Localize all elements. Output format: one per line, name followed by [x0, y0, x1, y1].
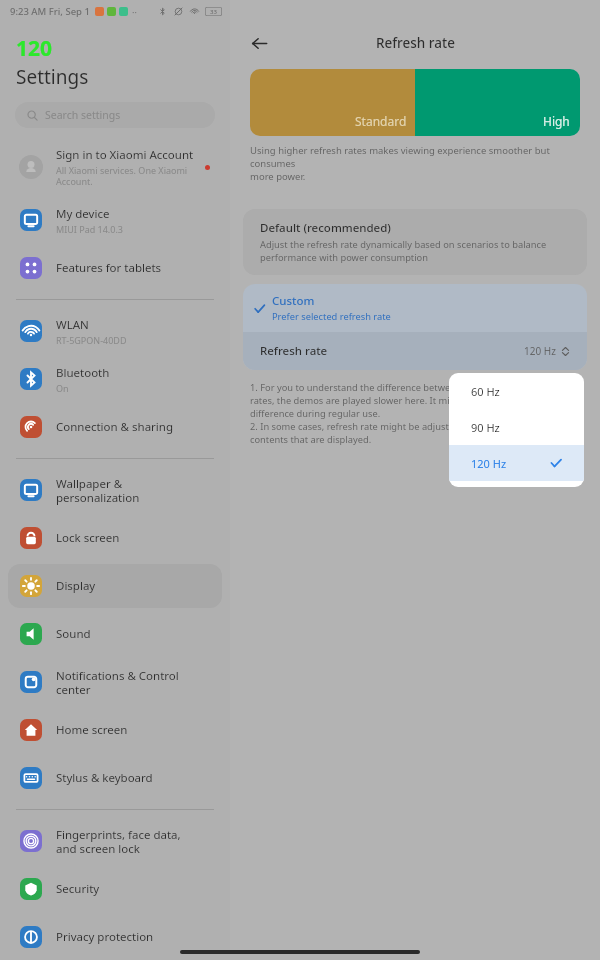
- staticText: MIUI Pad 14.0.3: [56, 223, 123, 235]
- staticText: Privacy protection: [56, 929, 154, 945]
- button[interactable]: Default (recommended): [243, 209, 587, 275]
- button[interactable]: My device: [8, 198, 222, 242]
- staticText: My device: [56, 206, 110, 222]
- button[interactable]: Security: [8, 867, 222, 911]
- button[interactable]: Bluetooth: [8, 357, 222, 401]
- staticText: Features for tablets: [56, 260, 162, 276]
- staticText: Refresh rate: [260, 343, 524, 359]
- button[interactable]: WLAN: [8, 309, 222, 353]
- staticText: Prefer selected refresh rate: [272, 310, 391, 323]
- button[interactable]: Sign in to Xiaomi Account: [8, 140, 222, 194]
- staticText: Stylus & keyboard: [56, 770, 153, 786]
- staticText: 33: [210, 8, 217, 16]
- staticText: Notifications & Control center: [56, 668, 179, 697]
- button[interactable]: 120 Hz: [449, 445, 584, 481]
- staticText: Lock screen: [56, 530, 120, 546]
- staticText: Sound: [56, 626, 91, 642]
- button[interactable]: Search settings: [15, 102, 215, 128]
- staticText: Security: [56, 881, 100, 897]
- button[interactable]: Back: [244, 28, 274, 58]
- staticText: 120 Hz: [524, 344, 556, 358]
- staticText: Display: [56, 578, 96, 594]
- button[interactable]: Refresh rate: [243, 332, 587, 370]
- staticText: 90 Hz: [471, 420, 500, 435]
- button[interactable]: Display: [8, 564, 222, 608]
- staticText: Adjust the refresh rate dynamically base…: [260, 238, 547, 264]
- staticText: Default (recommended): [260, 220, 391, 236]
- staticText: ··: [132, 6, 137, 18]
- staticText: Standard: [355, 113, 407, 129]
- staticText: All Xiaomi services. One Xiaomi Account.: [56, 164, 188, 187]
- staticText: WLAN: [56, 317, 89, 333]
- staticText: Search settings: [45, 108, 121, 122]
- button[interactable]: Notifications & Control center: [8, 660, 222, 704]
- button[interactable]: 90 Hz: [449, 409, 584, 445]
- button[interactable]: 60 Hz: [449, 373, 584, 409]
- staticText: Fingerprints, face data, and screen lock: [56, 827, 181, 856]
- button[interactable]: Wallpaper & personalization: [8, 468, 222, 512]
- staticText: Home screen: [56, 722, 128, 738]
- button[interactable]: Home screen: [8, 708, 222, 752]
- button[interactable]: Fingerprints, face data, and screen lock: [8, 819, 222, 863]
- button[interactable]: Connection & sharing: [8, 405, 222, 449]
- button[interactable]: Sound: [8, 612, 222, 656]
- staticText: 120 Hz: [471, 456, 550, 471]
- staticText: Connection & sharing: [56, 419, 173, 435]
- staticText: Refresh rate: [376, 34, 455, 52]
- staticText: Sign in to Xiaomi Account: [56, 147, 194, 163]
- staticText: 60 Hz: [471, 384, 500, 399]
- staticText: Using higher refresh rates makes viewing…: [250, 144, 580, 183]
- staticText: RT-5GPON-40DD: [56, 334, 127, 346]
- staticText: 9:23 AM Fri, Sep 1: [10, 5, 90, 18]
- button[interactable]: Features for tablets: [8, 246, 222, 290]
- button[interactable]: Lock screen: [8, 516, 222, 560]
- staticText: Custom: [272, 293, 315, 309]
- staticText: Settings: [16, 64, 89, 90]
- button[interactable]: Privacy protection: [8, 915, 222, 958]
- button[interactable]: Stylus & keyboard: [8, 756, 222, 800]
- staticText: 1. For you to understand the difference …: [250, 381, 580, 446]
- staticText: Bluetooth: [56, 365, 110, 381]
- staticText: 120: [16, 34, 53, 63]
- staticText: High: [543, 113, 570, 129]
- staticText: On: [56, 382, 69, 394]
- staticText: Wallpaper & personalization: [56, 476, 140, 505]
- button[interactable]: Custom: [243, 284, 587, 332]
